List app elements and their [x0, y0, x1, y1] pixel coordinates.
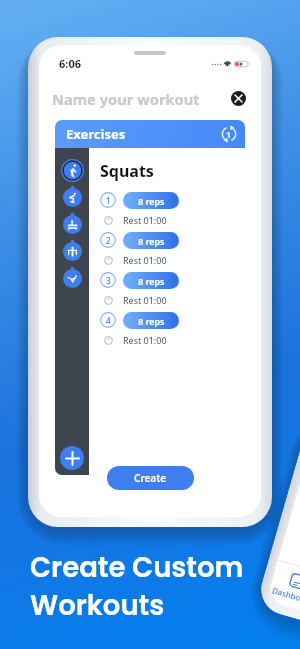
staticText: Dashboard: [271, 584, 300, 607]
button[interactable]: Close: [231, 91, 246, 106]
staticText: Create: [134, 471, 167, 485]
staticText: 8 reps: [138, 235, 165, 247]
button[interactable]: Exercise category 4: [63, 242, 82, 261]
button[interactable]: Repeat once: [221, 126, 237, 142]
staticText: 2: [106, 235, 111, 246]
staticText: Rest 01:00: [123, 214, 167, 226]
staticText: 1: [226, 128, 232, 140]
staticText: 3: [106, 275, 111, 286]
staticText: Exercises: [66, 125, 126, 143]
staticText: Rest 01:00: [123, 334, 167, 346]
button[interactable]: 8 reps: [123, 312, 179, 329]
staticText: Rest 01:00: [123, 294, 167, 306]
button[interactable]: Create: [107, 466, 194, 490]
staticText: Create Custom: [30, 548, 244, 586]
button[interactable]: Exercise category 5: [63, 269, 82, 288]
staticText: 1: [106, 195, 111, 206]
button[interactable]: Exercise category 2: [63, 188, 82, 207]
staticText: Name your workout: [52, 89, 200, 109]
staticText: 4: [106, 315, 111, 326]
button[interactable]: Exercise category 3: [63, 215, 82, 234]
button[interactable]: Add exercise: [60, 446, 84, 470]
staticText: 8 reps: [138, 275, 165, 287]
staticText: 6:06: [59, 56, 81, 71]
staticText: Squats: [100, 160, 154, 182]
button[interactable]: 8 reps: [123, 272, 179, 289]
staticText: Workouts: [30, 586, 165, 624]
staticText: 8 reps: [138, 195, 165, 207]
button[interactable]: 8 reps: [123, 232, 179, 249]
button[interactable]: Exercise category 1: [61, 159, 84, 182]
staticText: Rest 01:00: [123, 254, 167, 266]
button[interactable]: 8 reps: [123, 192, 179, 209]
staticText: 8 reps: [138, 315, 165, 327]
